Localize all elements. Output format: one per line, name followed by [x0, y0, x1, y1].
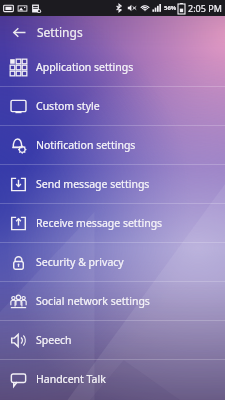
staticText: 56% — [164, 4, 177, 12]
staticText: Send message settings — [36, 177, 150, 191]
button[interactable]: Receive message settings — [0, 204, 225, 242]
button[interactable]: Application settings — [0, 48, 225, 86]
staticText: Settings — [37, 24, 83, 40]
staticText: Handcent Talk — [36, 372, 106, 386]
staticText: Speech — [36, 333, 72, 347]
button[interactable]: Social network settings — [0, 282, 225, 320]
staticText: Social network settings — [36, 294, 150, 308]
button[interactable]: Send message settings — [0, 165, 225, 203]
staticText: Notification settings — [36, 138, 136, 152]
button[interactable]: Handcent Talk — [0, 360, 225, 398]
button[interactable]: Speech — [0, 321, 225, 359]
button[interactable]: Notification settings — [0, 126, 225, 164]
button[interactable]: Back — [8, 21, 30, 43]
staticText: Custom style — [36, 99, 100, 113]
button[interactable]: Security & privacy — [0, 243, 225, 281]
staticText: Application settings — [36, 60, 134, 74]
staticText: Security & privacy — [36, 255, 124, 269]
staticText: Receive message settings — [36, 216, 163, 230]
button[interactable]: Custom style — [0, 87, 225, 125]
staticText: 2:05 PM — [188, 2, 222, 14]
